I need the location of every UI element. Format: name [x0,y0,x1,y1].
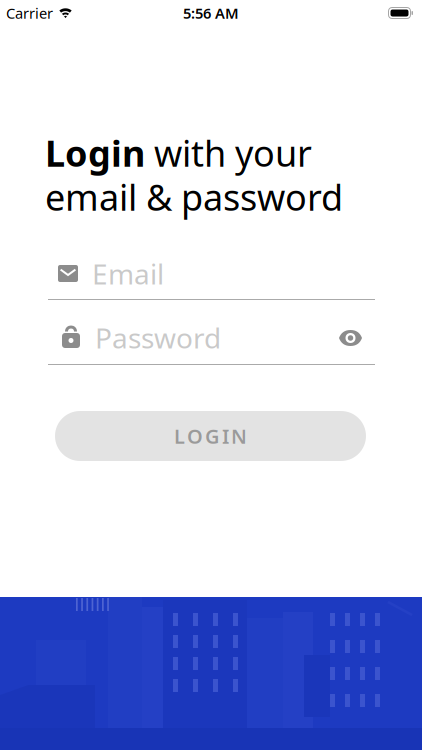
button[interactable]: Show password [339,330,362,346]
staticText: Password [95,319,221,356]
button[interactable]: LOGIN [55,411,366,461]
button[interactable]: Email [48,257,375,300]
staticText: Email [92,255,164,292]
staticText: LOGIN [174,423,247,449]
staticText: Login with your [45,129,312,177]
staticText: Carrier [6,3,53,23]
button[interactable]: Password [48,319,375,365]
staticText: email & password [45,173,343,221]
staticText: 5:56 AM [183,3,239,23]
